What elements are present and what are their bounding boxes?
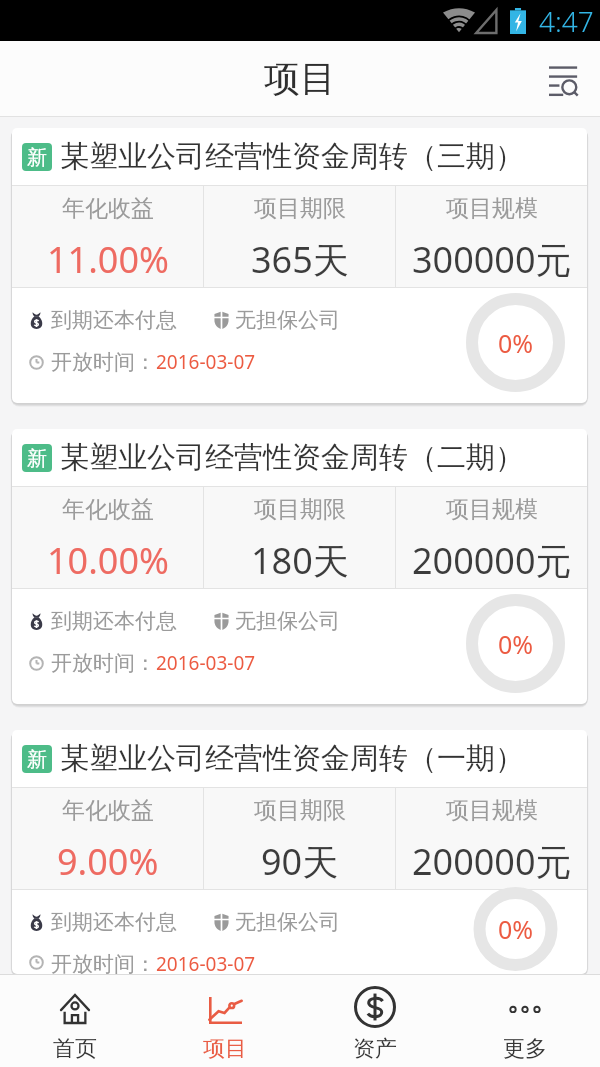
staticText: 200000元: [412, 837, 572, 886]
button[interactable]: Search list: [536, 54, 590, 108]
staticText: 开放时间：: [51, 650, 156, 676]
staticText: 首页: [53, 1035, 97, 1063]
staticText: 某塑业公司经营性资金周转（二期）: [60, 439, 524, 476]
staticText: 0%: [498, 627, 534, 661]
staticText: 到期还本付息: [51, 608, 177, 634]
staticText: 开放时间：: [51, 951, 156, 974]
button[interactable]: 资产: [300, 975, 450, 1067]
staticText: 新: [27, 747, 47, 772]
staticText: 年化收益: [62, 495, 154, 524]
staticText: 某塑业公司经营性资金周转（三期）: [60, 138, 524, 175]
staticText: 项目规模: [446, 796, 538, 825]
staticText: 项目规模: [446, 495, 538, 524]
staticText: 某塑业公司经营性资金周转（一期）: [60, 740, 524, 777]
button[interactable]: 新: [12, 730, 587, 974]
staticText: 年化收益: [62, 194, 154, 223]
staticText: 4:47: [539, 2, 594, 40]
staticText: 无担保公司: [235, 909, 340, 935]
button[interactable]: 新: [12, 429, 587, 704]
staticText: 更多: [503, 1035, 547, 1063]
staticText: 无担保公司: [235, 307, 340, 333]
staticText: 项目规模: [446, 194, 538, 223]
staticText: 到期还本付息: [51, 307, 177, 333]
staticText: 新: [27, 145, 47, 170]
staticText: 无担保公司: [235, 608, 340, 634]
staticText: 200000元: [412, 536, 572, 585]
staticText: 300000元: [412, 235, 572, 284]
staticText: 新: [27, 446, 47, 471]
button[interactable]: 更多: [450, 975, 600, 1067]
staticText: 开放时间：: [51, 349, 156, 375]
staticText: 项目: [264, 56, 336, 101]
staticText: 项目期限: [254, 495, 346, 524]
staticText: 项目期限: [254, 796, 346, 825]
staticText: 年化收益: [62, 796, 154, 825]
staticText: 2016-03-07: [156, 349, 256, 375]
staticText: 11.00%: [47, 235, 169, 284]
staticText: 2016-03-07: [156, 650, 256, 676]
staticText: 0%: [498, 326, 534, 360]
button[interactable]: 新: [12, 128, 587, 403]
staticText: 项目期限: [254, 194, 346, 223]
staticText: 10.00%: [47, 536, 169, 585]
staticText: 项目: [203, 1035, 247, 1063]
staticText: 资产: [353, 1035, 397, 1063]
button[interactable]: 首页: [0, 975, 150, 1067]
button[interactable]: 项目: [150, 975, 300, 1067]
staticText: 365天: [251, 235, 349, 284]
staticText: 2016-03-07: [156, 951, 256, 974]
staticText: 90天: [261, 837, 339, 886]
staticText: 180天: [251, 536, 349, 585]
staticText: 9.00%: [57, 837, 159, 886]
staticText: 到期还本付息: [51, 909, 177, 935]
staticText: 0%: [498, 912, 534, 946]
